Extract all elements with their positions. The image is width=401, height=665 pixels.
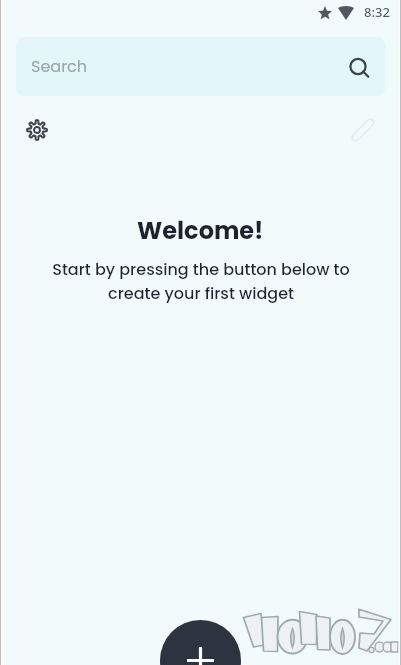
staticText: Start by pressing the button below to cr… xyxy=(52,258,350,305)
staticText: 8:32 xyxy=(364,3,390,21)
button[interactable]: Search xyxy=(16,37,385,96)
staticText: Search xyxy=(31,55,88,77)
button[interactable]: Edit xyxy=(348,115,378,145)
button[interactable]: Settings xyxy=(22,115,52,145)
staticText: Welcome! xyxy=(137,214,264,248)
button[interactable]: Add widget xyxy=(160,620,241,665)
